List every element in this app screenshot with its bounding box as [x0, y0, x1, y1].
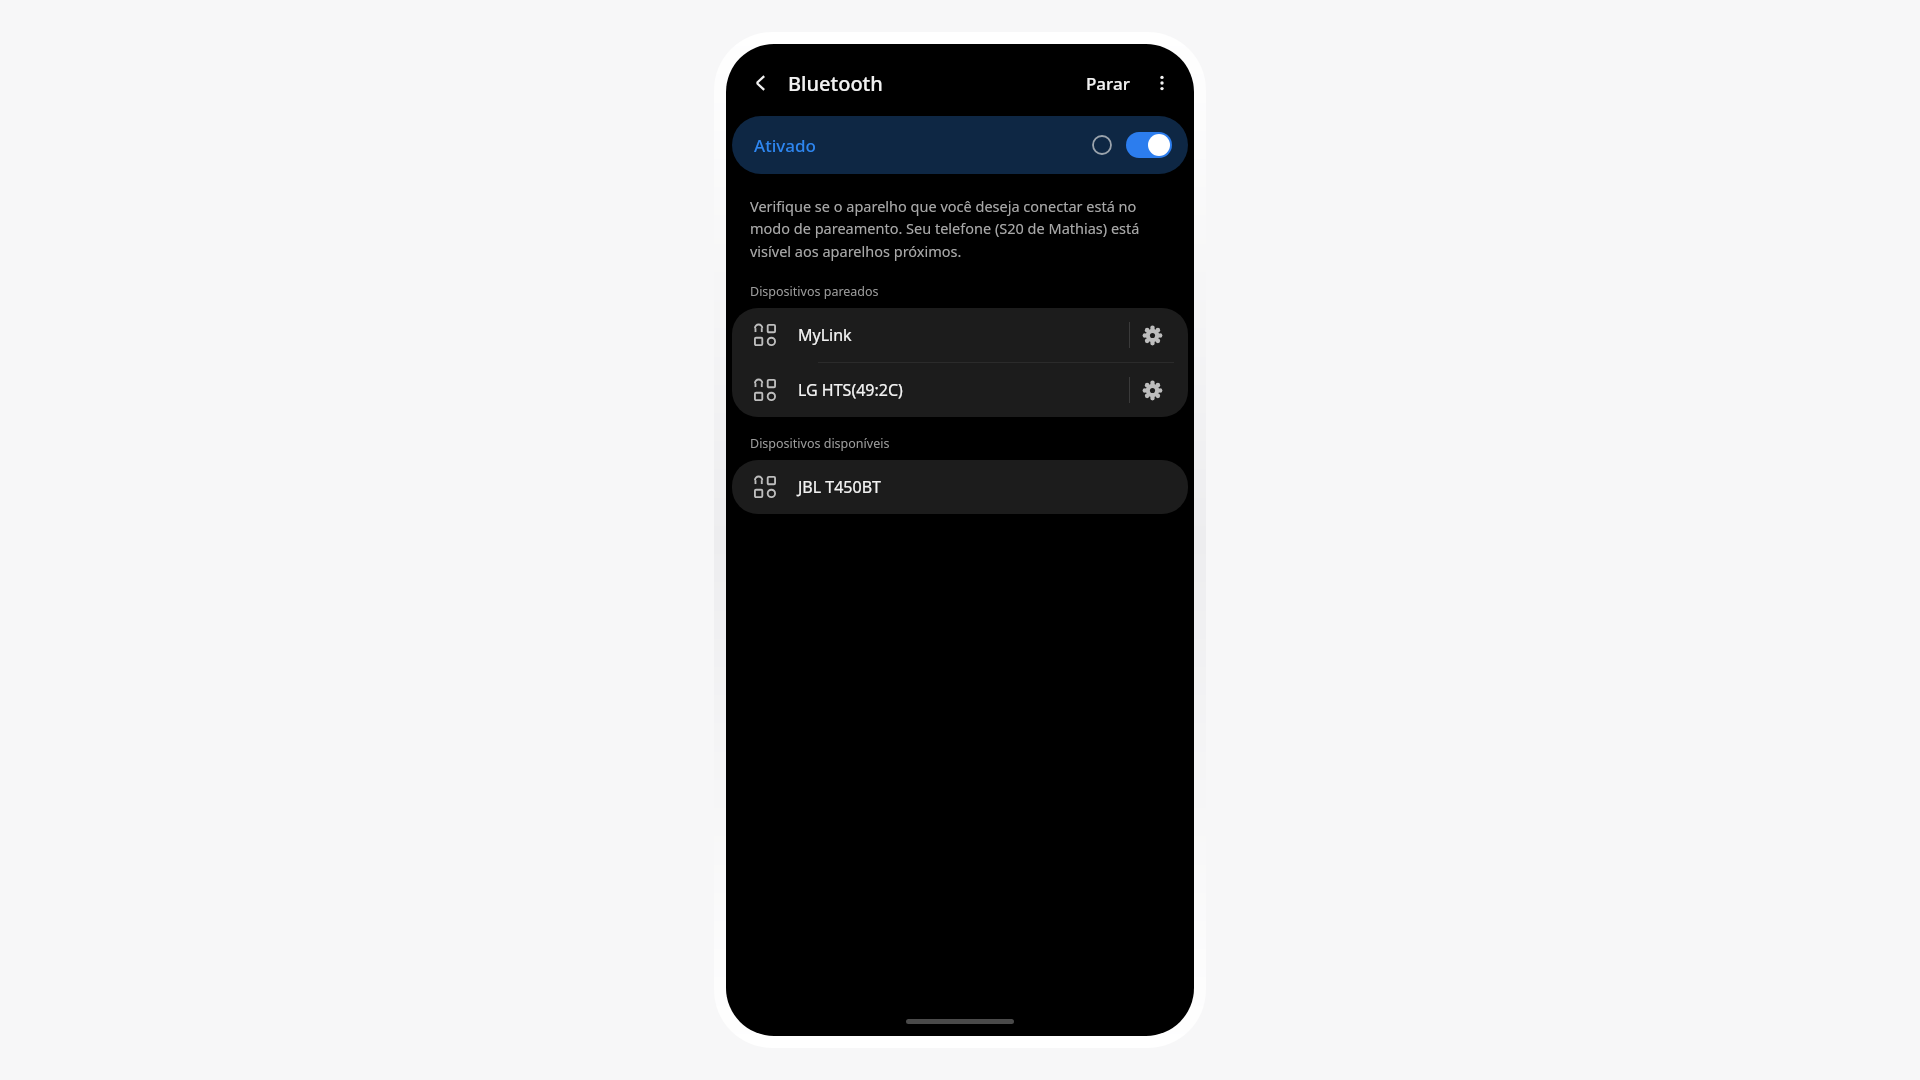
button[interactable]: Device settings: [1130, 313, 1174, 357]
button[interactable]: Parar: [1080, 66, 1136, 101]
button[interactable]: More options: [1146, 67, 1178, 99]
staticText: Ativado: [754, 134, 816, 157]
staticText: Verifique se o aparelho que você deseja …: [750, 196, 1168, 261]
button[interactable]: LG HTS(49:2C): [732, 363, 1188, 417]
button[interactable]: MyLink: [732, 308, 1188, 362]
staticText: LG HTS(49:2C): [798, 379, 903, 401]
button[interactable]: Ativado: [732, 116, 1188, 174]
button[interactable]: Bluetooth toggle: [1126, 132, 1172, 158]
staticText: Dispositivos pareados: [750, 283, 879, 300]
button[interactable]: Device settings: [1130, 368, 1174, 412]
staticText: Parar: [1086, 72, 1130, 95]
button[interactable]: Back: [744, 66, 778, 100]
staticText: JBL T450BT: [798, 476, 881, 498]
staticText: Dispositivos disponíveis: [750, 435, 890, 452]
staticText: MyLink: [798, 324, 852, 346]
button[interactable]: JBL T450BT: [732, 460, 1188, 514]
staticText: Bluetooth: [788, 70, 883, 97]
